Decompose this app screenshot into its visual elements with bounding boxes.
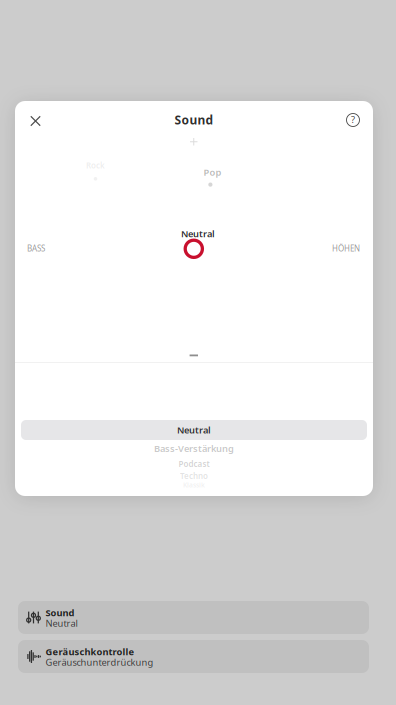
button[interactable]: Bass-Verstärkung (21, 441, 367, 455)
button[interactable]: Schließen (17, 104, 53, 138)
button[interactable]: Neutral (21, 420, 367, 440)
staticText: Neutral (177, 424, 211, 436)
staticText: Neutral (45, 617, 77, 629)
staticText: Neutral (181, 227, 215, 240)
staticText: Geräuschunterdrückung (45, 656, 153, 668)
staticText: Geräuschkontrolle (45, 645, 134, 658)
button[interactable]: Geräuschkontrolle (18, 640, 369, 673)
button[interactable]: Techno (21, 471, 367, 481)
button[interactable]: Hilfe (335, 103, 371, 137)
staticText: HÖHEN (332, 243, 360, 254)
staticText: Pop (203, 166, 221, 178)
staticText: Sound (45, 606, 74, 619)
staticText: BASS (27, 243, 45, 254)
staticText: Podcast (178, 459, 209, 469)
staticText: Sound (174, 112, 213, 128)
staticText: ? (351, 113, 355, 126)
staticText: Klassik (183, 481, 205, 489)
button[interactable]: Podcast (21, 458, 367, 470)
button[interactable]: Sound (18, 601, 369, 634)
staticText: Techno (180, 471, 208, 481)
staticText: Bass-Verstärkung (154, 442, 234, 455)
staticText: Rock (86, 160, 105, 171)
